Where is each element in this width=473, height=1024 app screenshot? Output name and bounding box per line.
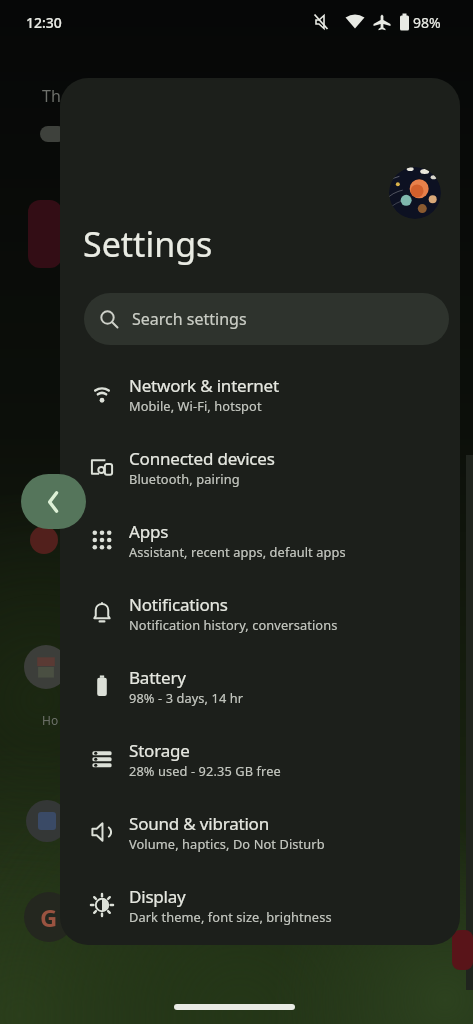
staticText: Volume, haptics, Do Not Disturb [129,835,325,852]
button[interactable]: Network & internet [60,357,460,430]
staticText: Notification history, conversations [129,616,338,633]
staticText: Mobile, Wi-Fi, hotspot [129,397,262,414]
staticText: Bluetooth, pairing [129,470,240,487]
staticText: 98% - 3 days, 14 hr [129,689,244,706]
staticText: Ho [42,712,59,728]
staticText: 12:30 [26,13,62,32]
staticText: 28% used - 92.35 GB free [129,762,281,779]
staticText: Th [42,85,61,107]
staticText: Settings [83,221,213,267]
staticText: G [40,901,58,934]
button[interactable]: Sound & vibration [60,795,460,868]
staticText: Dark theme, font size, brightness [129,908,332,925]
staticText: Network & internet [129,374,279,397]
button[interactable] [21,474,86,529]
staticText: Notifications [129,593,228,616]
staticText: Connected devices [129,447,275,470]
button[interactable]: Storage [60,722,460,795]
staticText: Battery [129,666,186,689]
staticText: 98% [413,13,441,32]
button[interactable]: Connected devices [60,430,460,503]
button[interactable]: Search settings [84,293,449,345]
staticText: Assistant, recent apps, default apps [129,543,346,560]
button[interactable]: Apps [60,503,460,576]
staticText: Sound & vibration [129,812,269,835]
staticText: Display [129,885,186,908]
button[interactable] [389,167,441,219]
button[interactable]: Display [60,868,460,941]
staticText: Storage [129,739,190,762]
button[interactable]: Notifications [60,576,460,649]
staticText: Apps [129,520,169,543]
button[interactable]: Battery [60,649,460,722]
staticText: Search settings [132,308,247,330]
